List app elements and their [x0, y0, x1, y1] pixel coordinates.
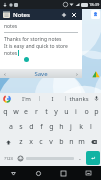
staticText: p [94, 107, 99, 117]
staticText: Notes [13, 11, 30, 19]
staticText: notes [4, 50, 18, 57]
button[interactable]: b [56, 134, 66, 150]
button[interactable]: ?123 [0, 150, 16, 166]
staticText: j [70, 122, 72, 132]
button[interactable]: Close [69, 10, 79, 20]
button[interactable]: Back [0, 166, 26, 180]
button[interactable]: h [56, 119, 66, 134]
staticText: g [49, 122, 54, 132]
button[interactable]: j [66, 119, 76, 134]
staticText: Thanks for storing notes [4, 36, 62, 43]
button[interactable]: w [11, 104, 21, 119]
staticText: t [45, 107, 48, 117]
staticText: s [19, 122, 23, 132]
button[interactable]: i [71, 104, 81, 119]
staticText: b [59, 137, 64, 147]
staticText: e [24, 107, 28, 117]
button[interactable]: p [91, 104, 101, 119]
button[interactable]: s [16, 119, 26, 134]
staticText: 18:39 [89, 2, 100, 7]
button[interactable]: I [40, 93, 65, 104]
button[interactable]: e [21, 104, 31, 119]
button[interactable]: Backspace [86, 134, 101, 150]
staticText: I [51, 95, 54, 103]
button[interactable]: y [51, 104, 61, 119]
button[interactable]: . [75, 150, 85, 166]
staticText: q [3, 107, 8, 117]
staticText: i [75, 107, 77, 117]
staticText: v [49, 137, 53, 147]
button[interactable]: I'm [14, 93, 39, 104]
staticText: It is easy and quick to store [4, 43, 68, 50]
staticText: thanks [69, 95, 89, 103]
button[interactable]: ‹ [0, 69, 82, 78]
staticText: d [29, 122, 34, 132]
button[interactable]: a [6, 119, 16, 134]
staticText: y [54, 107, 58, 117]
button[interactable]: g [46, 119, 56, 134]
button[interactable]: Enter [86, 151, 100, 165]
button[interactable]: m [76, 134, 86, 150]
staticText: r [35, 107, 38, 117]
button[interactable]: r [31, 104, 41, 119]
staticText: f [40, 122, 43, 132]
staticText: . [79, 153, 81, 163]
button[interactable]: f [36, 119, 46, 134]
button[interactable]: Home [26, 166, 51, 180]
button[interactable]: d [26, 119, 36, 134]
button[interactable]: Space [26, 153, 74, 163]
staticText: x [29, 137, 33, 147]
button[interactable]: x [26, 134, 36, 150]
staticText: I'm [22, 95, 31, 103]
button[interactable]: t [41, 104, 51, 119]
staticText: l [90, 122, 92, 132]
staticText: notes [4, 23, 18, 30]
button[interactable]: Voice input [91, 93, 101, 104]
button[interactable]: o [81, 104, 91, 119]
button[interactable]: Emoji [16, 150, 25, 166]
button[interactable]: Add note [59, 10, 69, 20]
staticText: z [19, 137, 23, 147]
staticText: ‹ [4, 70, 6, 78]
staticText: Save [10, 70, 72, 78]
staticText: k [79, 122, 83, 132]
staticText: › [76, 70, 78, 78]
button[interactable]: App shortcut [91, 10, 100, 19]
staticText: h [59, 122, 64, 132]
staticText: o [84, 107, 89, 117]
staticText: ?123 [4, 156, 13, 161]
button[interactable]: c [36, 134, 46, 150]
button[interactable]: Recents [51, 166, 76, 180]
button[interactable]: n [66, 134, 76, 150]
button[interactable]: Shift [0, 134, 16, 150]
button[interactable]: u [61, 104, 71, 119]
staticText: n [69, 137, 74, 147]
button[interactable]: l [86, 119, 96, 134]
staticText: w [13, 107, 19, 117]
button[interactable]: v [46, 134, 56, 150]
staticText: c [39, 137, 43, 147]
staticText: u [64, 107, 69, 117]
button[interactable]: k [76, 119, 86, 134]
staticText: a [9, 122, 13, 132]
button[interactable]: z [16, 134, 26, 150]
button[interactable]: Hide keyboard [76, 166, 101, 180]
staticText: m [78, 137, 85, 147]
button[interactable]: q [0, 104, 11, 119]
button[interactable]: Google [0, 93, 14, 104]
button[interactable]: thanks [66, 93, 91, 104]
